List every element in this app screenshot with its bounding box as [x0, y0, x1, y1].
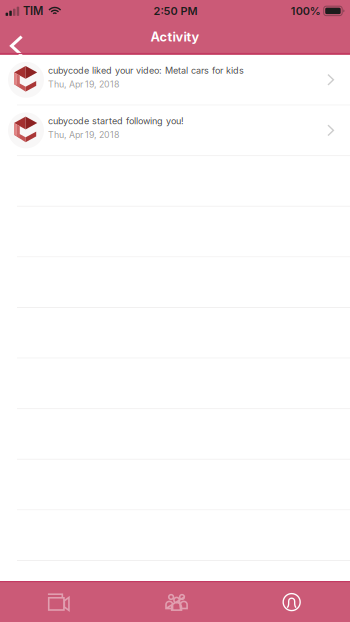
staticText: cubycode started following you! — [48, 116, 184, 127]
button[interactable]: cubycode started following you! — [0, 106, 350, 156]
staticText: Thu, Apr 19, 2018 — [48, 79, 119, 90]
staticText: TIM — [23, 4, 43, 18]
button[interactable]: Back — [0, 17, 42, 57]
staticText: Thu, Apr 19, 2018 — [48, 130, 119, 140]
button[interactable]: People — [117, 582, 233, 622]
staticText: 100% — [291, 4, 321, 17]
staticText: Activity — [150, 29, 199, 45]
button[interactable]: Videos — [0, 582, 117, 622]
staticText: cubycode liked your video: Metal cars fo… — [48, 65, 244, 76]
button[interactable]: cubycode liked your video: Metal cars fo… — [0, 55, 350, 106]
staticText: 2:50 PM — [154, 4, 198, 17]
button[interactable]: Profile — [233, 582, 350, 622]
